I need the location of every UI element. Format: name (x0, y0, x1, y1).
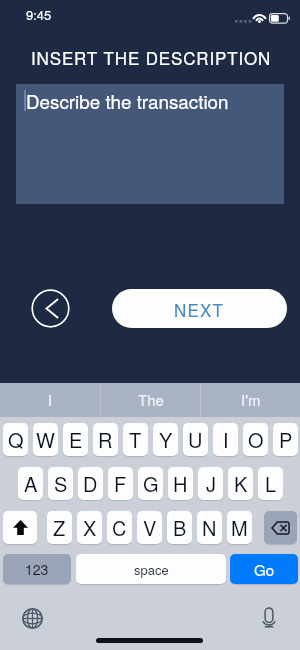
staticText: I'm (241, 389, 261, 410)
staticText: A (24, 469, 38, 498)
button[interactable]: M (227, 511, 252, 545)
button[interactable]: C (107, 511, 132, 545)
button[interactable]: Shift (3, 511, 37, 545)
button[interactable]: F (108, 467, 133, 501)
staticText: Describe the transaction (26, 87, 229, 114)
button[interactable]: Change keyboard (22, 608, 43, 629)
staticText: I (223, 425, 229, 454)
button[interactable]: K (228, 467, 253, 501)
staticText: S (54, 469, 68, 498)
staticText: E (69, 425, 83, 454)
button[interactable]: S (48, 467, 73, 501)
staticText: M (231, 513, 248, 542)
button[interactable]: Z (47, 511, 72, 545)
staticText: 123 (25, 559, 49, 579)
button[interactable]: X (77, 511, 102, 545)
button[interactable]: I (0, 383, 100, 417)
button[interactable]: E (63, 423, 88, 457)
button[interactable]: W (33, 423, 58, 457)
staticText: X (83, 513, 97, 542)
staticText: Y (159, 425, 173, 454)
button[interactable]: B (167, 511, 192, 545)
button[interactable]: NEXT (112, 289, 287, 328)
staticText: Z (53, 513, 66, 542)
staticText: W (36, 425, 55, 454)
button[interactable]: I (213, 423, 238, 457)
button[interactable]: The (101, 383, 200, 417)
button[interactable]: Q (3, 423, 28, 457)
staticText: L (265, 469, 277, 498)
button[interactable]: O (243, 423, 268, 457)
staticText: N (202, 513, 217, 542)
staticText: space (134, 560, 169, 579)
staticText: NEXT (174, 297, 225, 321)
staticText: O (248, 425, 264, 454)
staticText: C (112, 513, 127, 542)
button[interactable]: T (123, 423, 148, 457)
staticText: Go (254, 559, 275, 580)
button[interactable]: Back (31, 289, 70, 328)
staticText: V (143, 513, 157, 542)
button[interactable]: Go (230, 554, 298, 585)
staticText: R (98, 425, 113, 454)
button[interactable]: J (198, 467, 223, 501)
button[interactable]: U (183, 423, 208, 457)
staticText: D (83, 469, 98, 498)
staticText: J (206, 469, 216, 498)
button[interactable]: 123 (3, 554, 71, 585)
button[interactable]: V (137, 511, 162, 545)
staticText: U (188, 425, 203, 454)
button[interactable]: N (197, 511, 222, 545)
button[interactable]: Describe the transaction (16, 84, 284, 204)
staticText: K (234, 469, 248, 498)
button[interactable]: A (18, 467, 43, 501)
staticText: T (129, 425, 142, 454)
staticText: The (138, 389, 164, 410)
button[interactable]: Dictation (259, 606, 279, 628)
staticText: G (143, 469, 159, 498)
staticText: F (114, 469, 127, 498)
staticText: I (48, 389, 53, 410)
staticText: Q (8, 425, 24, 454)
button[interactable]: D (78, 467, 103, 501)
staticText: B (173, 513, 187, 542)
button[interactable]: H (168, 467, 193, 501)
staticText: P (279, 425, 293, 454)
button[interactable]: I'm (201, 383, 300, 417)
button[interactable]: R (93, 423, 118, 457)
button[interactable]: G (138, 467, 163, 501)
button[interactable]: space (76, 554, 226, 585)
button[interactable]: P (273, 423, 298, 457)
button[interactable]: L (258, 467, 283, 501)
staticText: INSERT THE DESCRIPTION (31, 45, 272, 69)
staticText: 9:45 (26, 5, 52, 24)
staticText: H (173, 469, 188, 498)
button[interactable]: Y (153, 423, 178, 457)
button[interactable]: Backspace (264, 511, 297, 545)
